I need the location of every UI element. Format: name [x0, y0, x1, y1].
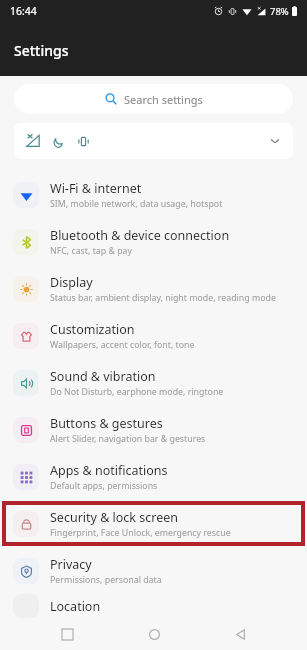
- button[interactable]: Airplane mode: [14, 123, 293, 159]
- button[interactable]: Customization: [0, 312, 307, 359]
- staticText: 78%: [270, 5, 289, 18]
- button[interactable]: Privacy: [0, 547, 307, 594]
- staticText: Default apps, permissions: [50, 480, 158, 492]
- other: Vibrate: [77, 135, 90, 148]
- staticText: Alert Slider, navigation bar & gestures: [50, 433, 206, 445]
- staticText: Privacy: [50, 556, 92, 573]
- button[interactable]: Bluetooth & device connection: [0, 218, 307, 265]
- button[interactable]: Apps & notifications: [0, 453, 307, 500]
- button[interactable]: Buttons & gestures: [0, 406, 307, 453]
- button[interactable]: Location: [0, 594, 307, 618]
- button[interactable]: Sound & vibration: [0, 359, 307, 406]
- other: Expand: [269, 135, 281, 147]
- staticText: Location: [50, 598, 101, 615]
- staticText: SIM, mobile network, data usage, hotspot: [50, 198, 223, 210]
- staticText: Security & lock screen: [50, 509, 179, 526]
- staticText: Sound & vibration: [50, 368, 156, 385]
- staticText: Status bar, ambient display, night mode,…: [50, 292, 276, 304]
- staticText: Display: [50, 274, 93, 291]
- staticText: 16:44: [10, 4, 37, 18]
- other: Do not disturb: [52, 135, 65, 148]
- staticText: Wallpapers, accent color, font, tone: [50, 339, 195, 351]
- staticText: NFC, cast, tap & pay: [50, 245, 133, 257]
- staticText: Wi-Fi & internet: [50, 180, 142, 197]
- button[interactable]: Wi-Fi & internet: [0, 171, 307, 218]
- staticText: Bluetooth & device connection: [50, 227, 230, 244]
- button[interactable]: Back: [220, 618, 260, 650]
- staticText: Customization: [50, 321, 135, 338]
- button[interactable]: Search settings: [14, 84, 293, 114]
- other: Airplane mode: [26, 134, 40, 148]
- button[interactable]: Display: [0, 265, 307, 312]
- staticText: Search settings: [124, 92, 203, 107]
- staticText: Fingerprint, Face Unlock, emergency resc…: [50, 527, 231, 539]
- staticText: Permissions, personal data: [50, 574, 162, 586]
- staticText: Do Not Disturb, earphone mode, ringtone: [50, 386, 224, 398]
- button[interactable]: Home: [134, 618, 174, 650]
- staticText: Settings: [14, 41, 69, 60]
- button[interactable]: Security & lock screen: [0, 500, 307, 547]
- staticText: Apps & notifications: [50, 462, 168, 479]
- staticText: Buttons & gestures: [50, 415, 163, 432]
- button[interactable]: Recents: [47, 618, 87, 650]
